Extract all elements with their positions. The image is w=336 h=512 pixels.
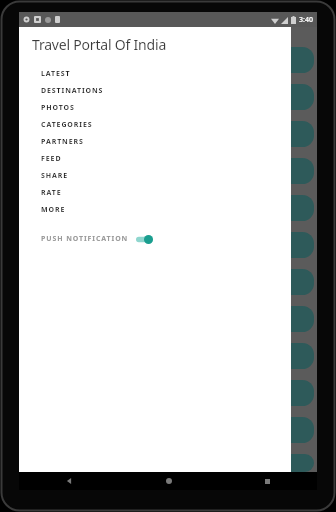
button[interactable]: MORE xyxy=(19,201,291,218)
button[interactable]: PHOTOS xyxy=(19,99,291,116)
staticText: RATE xyxy=(41,188,62,198)
button[interactable]: PUSH NOTIFICATION xyxy=(19,231,163,247)
button[interactable]: CATEGORIES xyxy=(19,116,291,133)
staticText: Travel Portal Of India xyxy=(32,35,167,54)
button[interactable]: DESTINATIONS xyxy=(19,82,291,99)
button[interactable]: LATEST xyxy=(19,65,291,82)
staticText: CATEGORIES xyxy=(41,120,93,130)
staticText: FEED xyxy=(41,154,62,164)
button[interactable]: FEED xyxy=(19,150,291,167)
other: Push notification toggle xyxy=(136,235,153,244)
staticText: DESTINATIONS xyxy=(41,86,104,96)
button[interactable]: Recents xyxy=(218,472,317,490)
button[interactable]: RATE xyxy=(19,184,291,201)
button[interactable]: Back xyxy=(19,472,119,490)
staticText: LATEST xyxy=(41,69,71,79)
button[interactable]: SHARE xyxy=(19,167,291,184)
staticText: PUSH NOTIFICATION xyxy=(41,234,129,244)
staticText: PHOTOS xyxy=(41,103,75,113)
button[interactable]: Home xyxy=(119,472,218,490)
staticText: PARTNERS xyxy=(41,137,84,147)
button[interactable]: PARTNERS xyxy=(19,133,291,150)
staticText: 3:40 xyxy=(299,15,313,25)
staticText: MORE xyxy=(41,205,66,215)
staticText: SHARE xyxy=(41,171,69,181)
